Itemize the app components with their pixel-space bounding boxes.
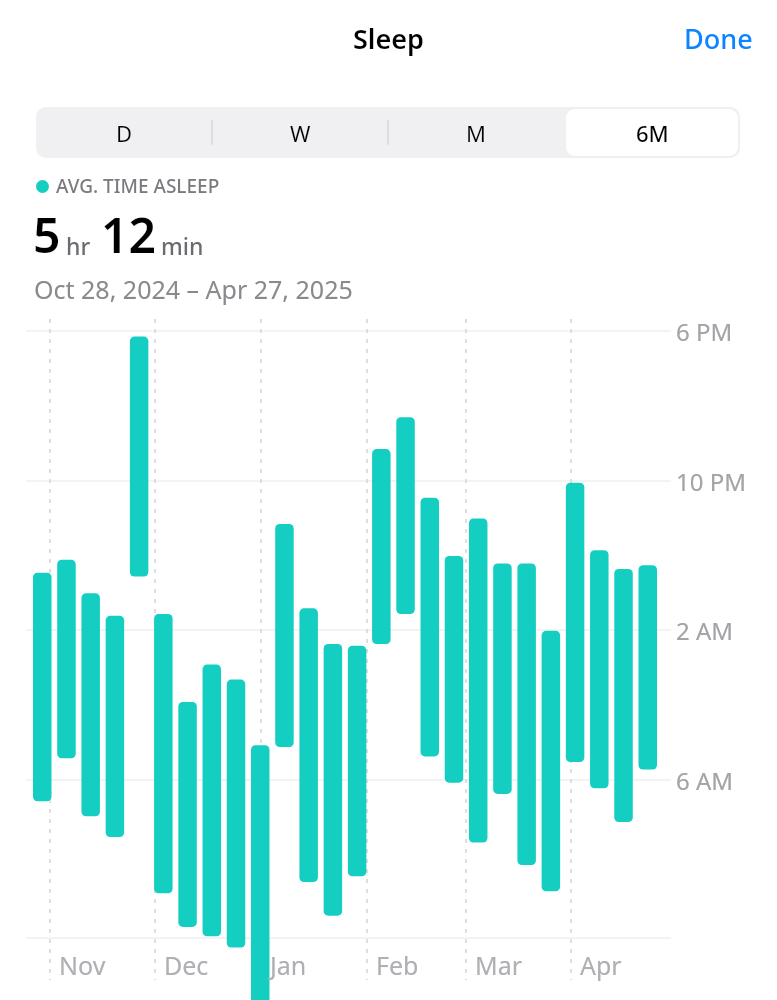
- staticText: Apr: [580, 948, 622, 982]
- staticText: W: [290, 118, 311, 148]
- staticText: Done: [684, 20, 753, 57]
- staticText: AVG. TIME ASLEEP: [56, 173, 220, 199]
- staticText: Oct 28, 2024 – Apr 27, 2025: [34, 272, 353, 306]
- button[interactable]: D: [38, 109, 210, 156]
- staticText: Sleep: [353, 20, 424, 57]
- staticText: min: [161, 230, 204, 261]
- staticText: D: [116, 118, 133, 148]
- staticText: 2 AM: [676, 614, 734, 647]
- staticText: Jan: [270, 948, 307, 982]
- button[interactable]: M: [390, 109, 562, 156]
- button[interactable]: 6M: [566, 109, 738, 156]
- staticText: M: [466, 118, 486, 148]
- staticText: hr: [66, 230, 91, 261]
- staticText: 6 AM: [676, 764, 734, 797]
- staticText: 6 PM: [676, 315, 733, 348]
- staticText: 6M: [636, 118, 669, 148]
- button[interactable]: W: [214, 109, 386, 156]
- staticText: 5: [33, 202, 61, 267]
- staticText: Feb: [376, 948, 419, 982]
- staticText: Mar: [475, 948, 523, 982]
- staticText: Dec: [164, 948, 209, 982]
- button[interactable]: Done: [660, 8, 777, 69]
- staticText: 12: [101, 202, 156, 267]
- staticText: 10 PM: [676, 465, 746, 498]
- staticText: Nov: [59, 948, 106, 982]
